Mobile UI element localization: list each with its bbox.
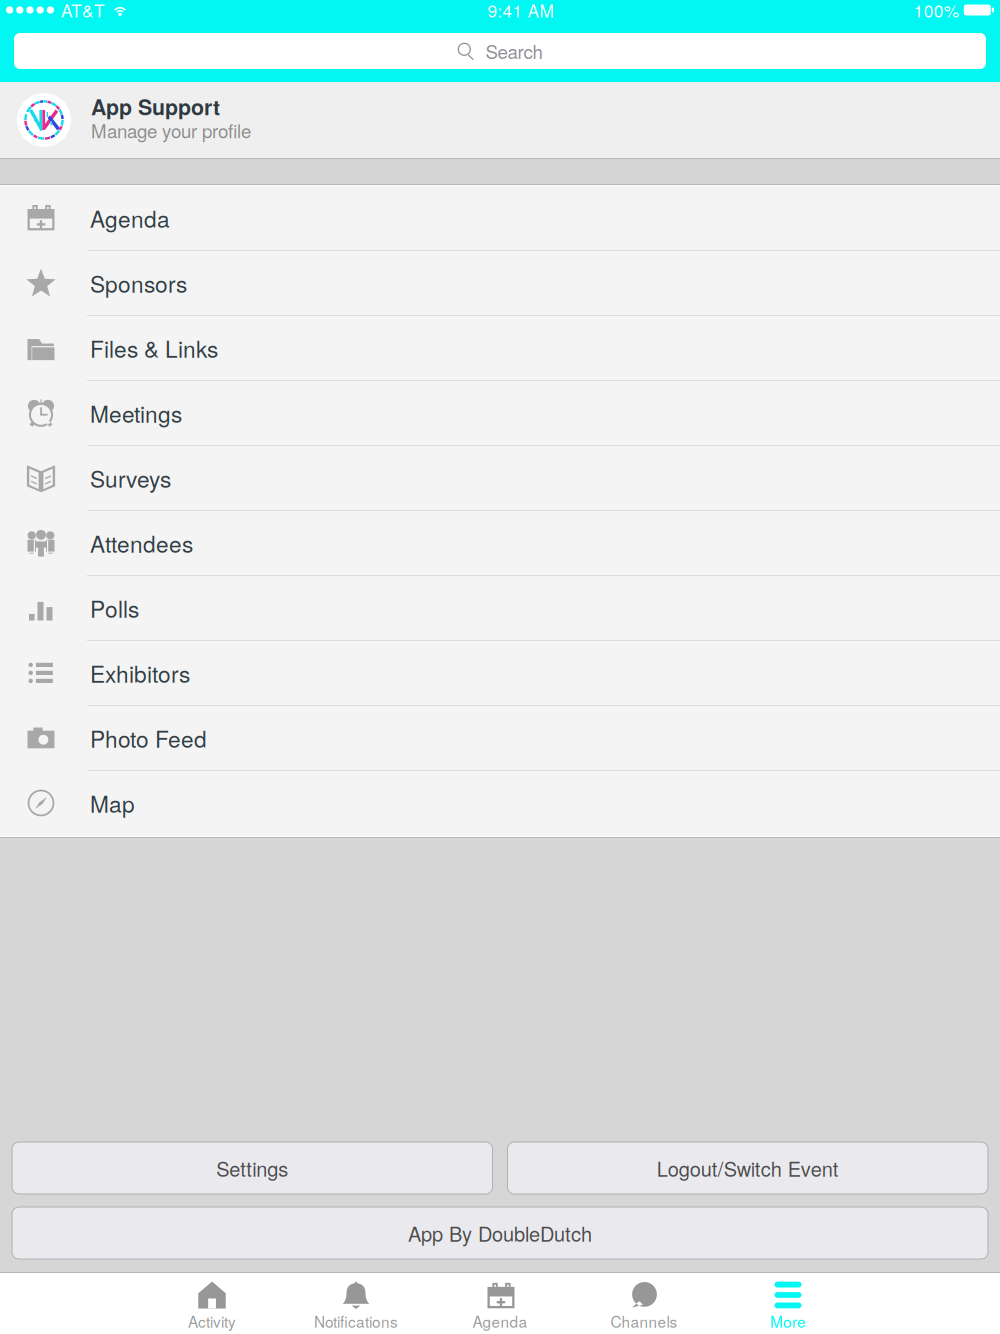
- staticText: 100%: [914, 0, 959, 22]
- button[interactable]: Files & Links: [0, 316, 1000, 381]
- staticText: Exhibitors: [90, 657, 190, 689]
- staticText: App Support: [91, 91, 220, 122]
- staticText: Activity: [188, 1310, 236, 1332]
- button[interactable]: Exhibitors: [0, 641, 1000, 706]
- button[interactable]: Map: [0, 771, 1000, 836]
- staticText: Manage your profile: [91, 117, 251, 144]
- button[interactable]: Channels: [572, 1273, 716, 1334]
- staticText: 9:41 AM: [487, 0, 553, 22]
- staticText: Photo Feed: [90, 722, 207, 754]
- button[interactable]: Attendees: [0, 511, 1000, 576]
- staticText: Agenda: [472, 1310, 527, 1332]
- staticText: Map: [90, 787, 135, 819]
- staticText: Notifications: [314, 1310, 398, 1332]
- staticText: AT&T: [61, 0, 105, 22]
- staticText: More: [770, 1310, 806, 1332]
- staticText: Channels: [610, 1310, 677, 1332]
- staticText: Surveys: [90, 462, 171, 494]
- staticText: Sponsors: [90, 267, 187, 299]
- button[interactable]: Logout/Switch Event: [507, 1142, 988, 1194]
- button[interactable]: App Support: [0, 82, 1000, 158]
- staticText: Meetings: [90, 397, 182, 429]
- button[interactable]: Polls: [0, 576, 1000, 641]
- button[interactable]: Agenda: [0, 186, 1000, 251]
- button[interactable]: Agenda: [428, 1273, 572, 1334]
- staticText: Search: [485, 38, 542, 64]
- button[interactable]: Photo Feed: [0, 706, 1000, 771]
- button[interactable]: Notifications: [284, 1273, 428, 1334]
- staticText: Agenda: [90, 202, 170, 234]
- button[interactable]: Meetings: [0, 381, 1000, 446]
- staticText: Logout/Switch Event: [657, 1154, 839, 1182]
- staticText: Attendees: [90, 527, 193, 559]
- button[interactable]: Activity: [140, 1273, 284, 1334]
- button[interactable]: Sponsors: [0, 251, 1000, 316]
- button[interactable]: App By DoubleDutch: [12, 1207, 988, 1259]
- staticText: Settings: [216, 1154, 288, 1182]
- staticText: Polls: [90, 592, 139, 624]
- button[interactable]: Surveys: [0, 446, 1000, 511]
- staticText: App By DoubleDutch: [408, 1219, 592, 1247]
- button[interactable]: Settings: [12, 1142, 492, 1194]
- staticText: Files & Links: [90, 332, 218, 364]
- button[interactable]: More: [716, 1273, 860, 1334]
